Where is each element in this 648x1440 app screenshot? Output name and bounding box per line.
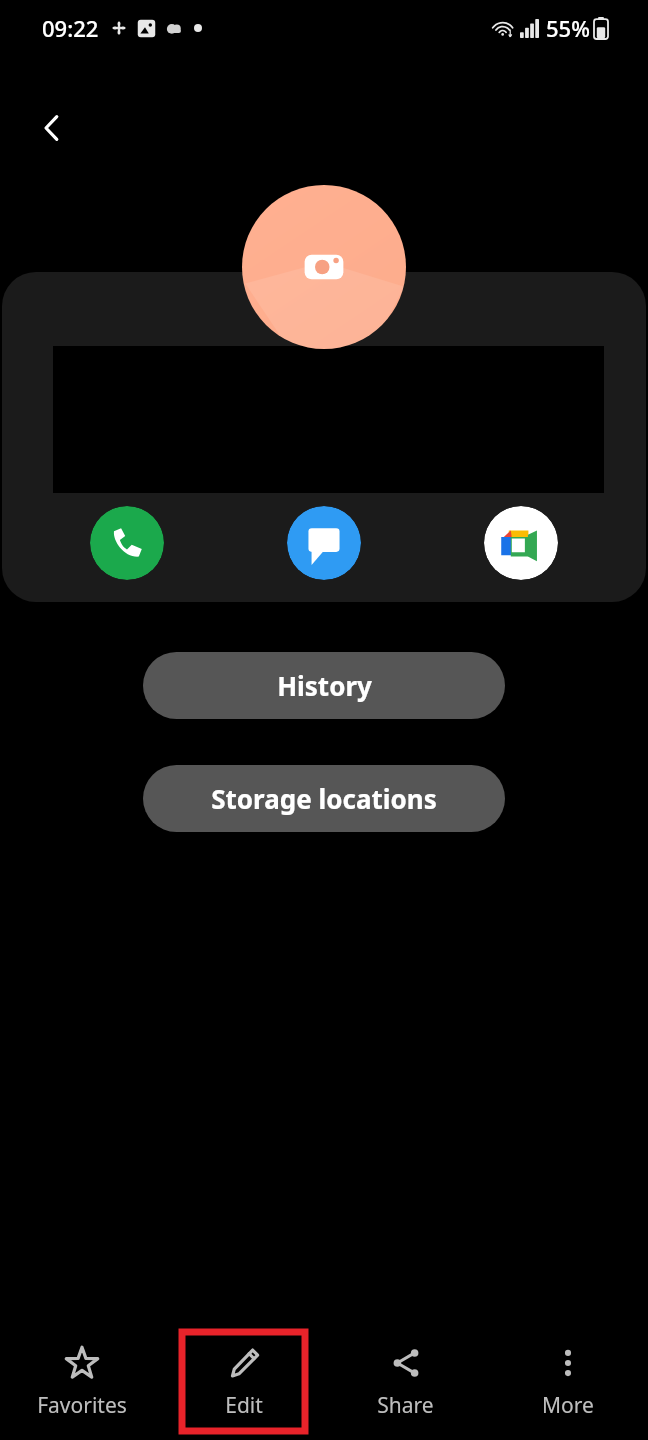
button[interactable]: Edit <box>182 1332 305 1431</box>
button[interactable]: Share <box>344 1332 467 1431</box>
button[interactable]: Call <box>90 506 164 580</box>
staticText: More <box>542 1391 594 1420</box>
button[interactable]: More <box>506 1332 629 1431</box>
button[interactable]: Call <box>2 272 646 602</box>
staticText: Edit <box>225 1391 263 1420</box>
staticText: Share <box>377 1391 434 1420</box>
button[interactable]: Add photo <box>242 185 406 349</box>
button[interactable]: Message <box>287 506 361 580</box>
button[interactable]: Video call <box>484 506 558 580</box>
staticText: 09:22 <box>42 13 99 43</box>
button[interactable]: Back <box>20 96 84 160</box>
button[interactable]: Favorites <box>20 1332 143 1431</box>
staticText: 55% <box>546 13 590 43</box>
staticText: Favorites <box>37 1391 127 1420</box>
staticText: History <box>277 668 372 703</box>
button[interactable]: Storage locations <box>143 765 505 832</box>
staticText: Storage locations <box>211 781 437 816</box>
button[interactable]: History <box>143 652 505 719</box>
